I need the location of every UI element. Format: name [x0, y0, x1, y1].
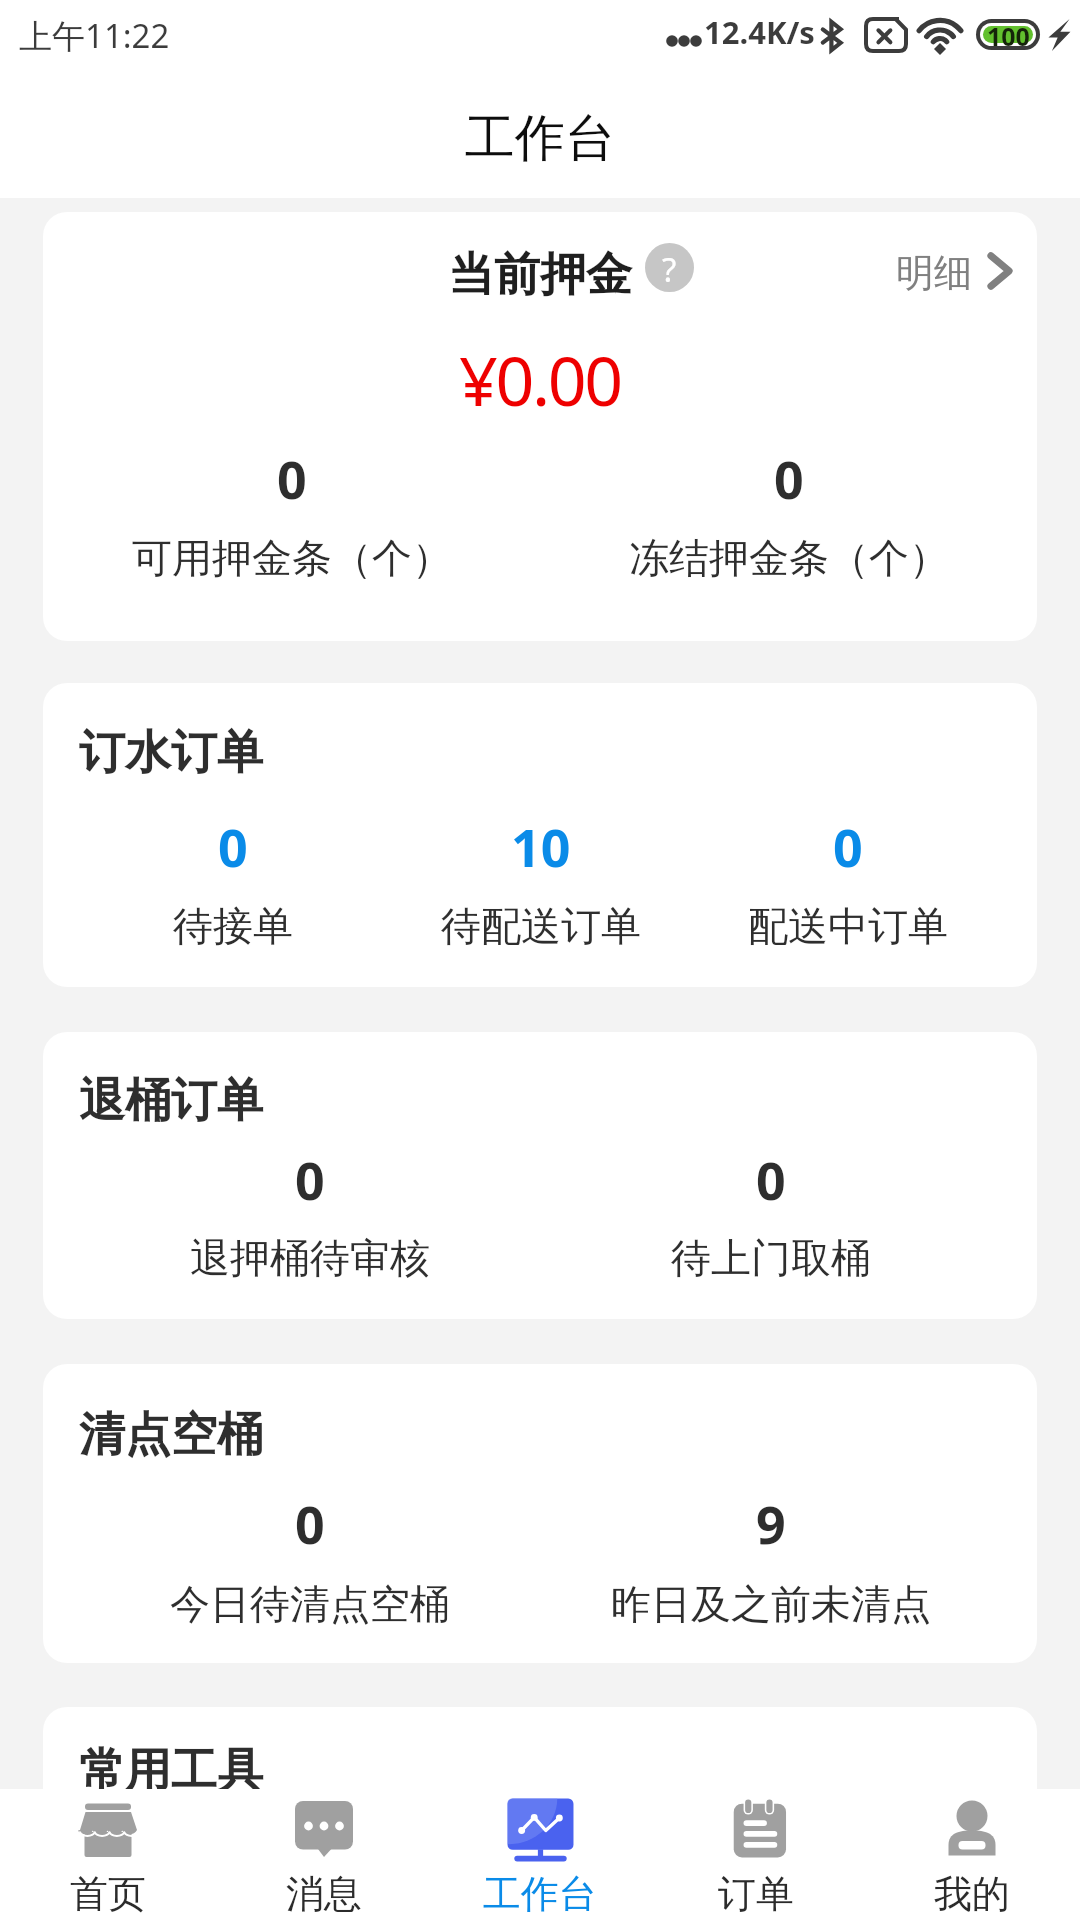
staticText: ?: [662, 247, 677, 292]
staticText: 0: [756, 1144, 786, 1215]
staticText: ¥0.00: [459, 333, 621, 426]
staticText: 12.4K/s: [704, 11, 815, 53]
staticText: 0: [295, 1488, 325, 1559]
button[interactable]: 0: [79, 788, 387, 987]
button[interactable]: 工作台: [432, 1789, 648, 1920]
button[interactable]: 查看押金明细: [886, 243, 1019, 303]
staticText: 0: [218, 811, 248, 882]
button[interactable]: 押金说明: [645, 243, 694, 292]
staticText: 可用押金条（个）: [132, 533, 452, 583]
button[interactable]: 9: [540, 1470, 1001, 1663]
staticText: 9: [756, 1488, 786, 1559]
staticText: 我的: [934, 1870, 1010, 1918]
button[interactable]: 0: [43, 430, 540, 641]
button[interactable]: 0: [79, 1470, 540, 1663]
button[interactable]: 订单: [648, 1789, 864, 1920]
staticText: 100: [987, 19, 1030, 49]
button[interactable]: 0: [540, 1136, 1001, 1319]
staticText: 配送中订单: [748, 901, 948, 951]
button[interactable]: 我的: [864, 1789, 1080, 1920]
staticText: 消息: [286, 1870, 362, 1918]
staticText: 待接单: [173, 901, 293, 951]
staticText: 订单: [718, 1870, 794, 1918]
staticText: 退押桶待审核: [190, 1233, 430, 1283]
button[interactable]: 消息: [216, 1789, 432, 1920]
staticText: 待配送订单: [441, 901, 641, 951]
staticText: 退桶订单: [79, 1072, 263, 1130]
button[interactable]: 常用工具: [43, 1742, 1037, 1800]
button[interactable]: 首页: [0, 1789, 216, 1920]
button[interactable]: 0: [79, 1136, 540, 1319]
staticText: 上午11:22: [19, 13, 170, 58]
staticText: 工作台: [483, 1870, 597, 1918]
staticText: 工作台: [465, 107, 615, 170]
staticText: 0: [774, 443, 804, 514]
staticText: 昨日及之前未清点: [611, 1579, 931, 1629]
staticText: 0: [833, 811, 863, 882]
staticText: 0: [295, 1144, 325, 1215]
staticText: 首页: [70, 1870, 146, 1918]
staticText: 今日待清点空桶: [170, 1579, 450, 1629]
staticText: 当前押金: [448, 246, 632, 304]
button[interactable]: 10: [387, 788, 694, 987]
button[interactable]: 0: [540, 430, 1037, 641]
staticText: 冻结押金条（个）: [629, 533, 949, 583]
staticText: 0: [277, 443, 307, 514]
staticText: 常用工具: [79, 1742, 263, 1800]
staticText: 明细: [896, 249, 972, 297]
button[interactable]: 0: [694, 788, 1001, 987]
staticText: 10: [511, 811, 571, 882]
staticText: 订水订单: [79, 724, 263, 782]
staticText: 待上门取桶: [671, 1233, 871, 1283]
staticText: 清点空桶: [79, 1406, 263, 1464]
